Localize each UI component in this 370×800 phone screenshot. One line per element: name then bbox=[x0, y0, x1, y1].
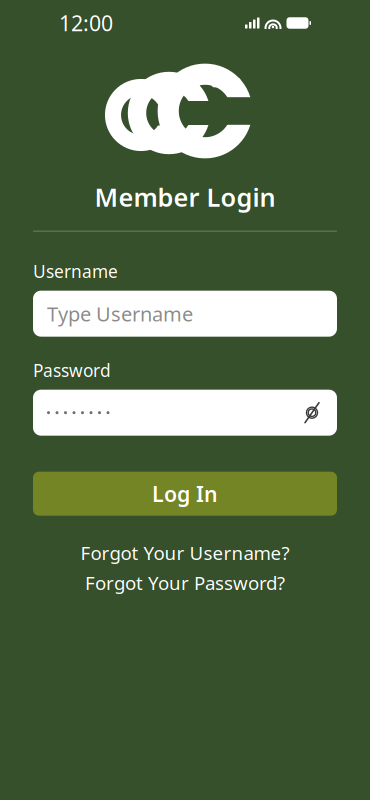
button[interactable]: Forgot Your Username? bbox=[33, 538, 337, 568]
button[interactable]: Log In bbox=[33, 472, 337, 516]
button[interactable]: Show password bbox=[295, 391, 329, 435]
staticText: Type Username bbox=[47, 300, 193, 327]
staticText: Forgot Your Username? bbox=[80, 540, 289, 565]
staticText: Log In bbox=[152, 479, 218, 508]
staticText: 12:00 bbox=[59, 9, 113, 37]
staticText: Member Login bbox=[94, 180, 275, 214]
staticText: Username bbox=[33, 260, 118, 283]
button[interactable]: Forgot Your Password? bbox=[33, 568, 337, 598]
staticText: Forgot Your Password? bbox=[85, 570, 285, 595]
staticText: Password bbox=[33, 359, 111, 382]
button[interactable]: Type Username bbox=[33, 291, 337, 337]
